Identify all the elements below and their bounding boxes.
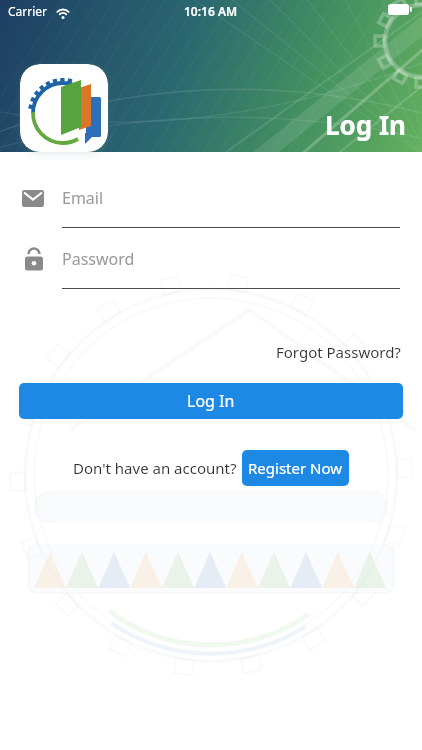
staticText: Log In — [325, 107, 406, 142]
staticText: Don't have an account? — [73, 458, 237, 478]
staticText: Password — [62, 248, 135, 270]
button[interactable]: Log In — [19, 383, 403, 419]
staticText: 10:16 AM — [184, 3, 238, 19]
button[interactable]: Register Now — [242, 450, 349, 486]
button[interactable]: Email — [0, 183, 422, 213]
button[interactable]: Password — [0, 244, 422, 274]
staticText: Email — [62, 187, 104, 209]
staticText: Carrier — [8, 3, 48, 19]
staticText: Register Now — [248, 458, 343, 478]
staticText: Log In — [187, 390, 235, 412]
button[interactable]: Forgot Password? — [276, 342, 401, 362]
